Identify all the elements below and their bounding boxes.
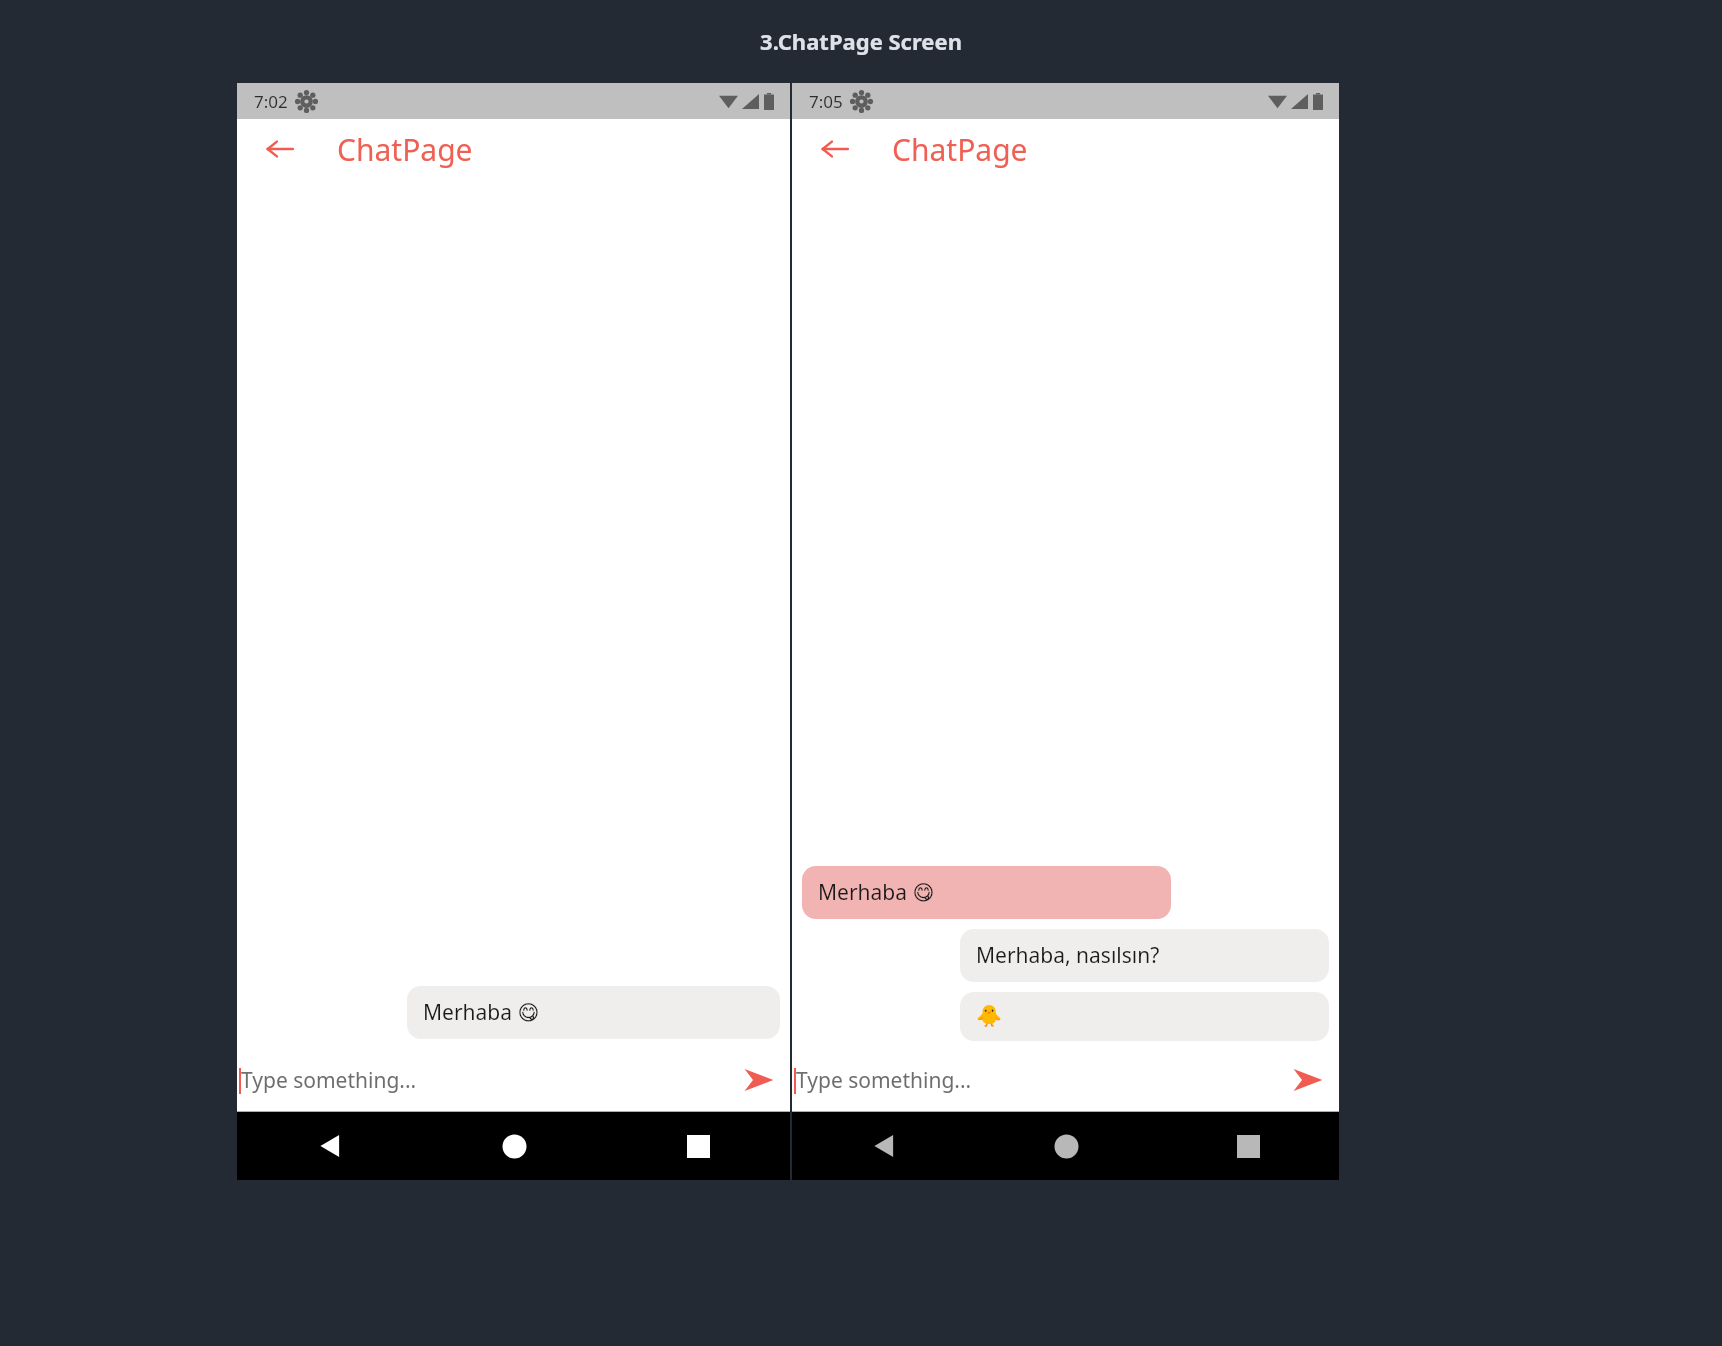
button[interactable]: Home	[975, 1112, 1157, 1180]
staticText: ChatPage	[892, 129, 1028, 170]
button[interactable]: Back	[257, 126, 303, 172]
staticText: 3.ChatPage Screen	[760, 26, 962, 56]
staticText: 7:05	[809, 90, 843, 113]
button[interactable]: 🐥	[960, 992, 1329, 1041]
button[interactable]: Type something...	[792, 1049, 1277, 1111]
staticText: Merhaba 😋	[423, 998, 540, 1027]
staticText: Type something...	[796, 1066, 972, 1095]
button[interactable]: Send	[728, 1049, 790, 1111]
button[interactable]: Type something...	[237, 1049, 728, 1111]
staticText: Merhaba 😋	[818, 878, 935, 907]
staticText: 🐥	[976, 1004, 1003, 1029]
button[interactable]: Merhaba 😋	[802, 866, 1171, 919]
staticText: ChatPage	[337, 129, 473, 170]
staticText: Type something...	[241, 1066, 417, 1095]
staticText: 7:02	[254, 90, 288, 113]
button[interactable]: Merhaba, nasılsın?	[960, 929, 1329, 982]
button[interactable]: Send	[1277, 1049, 1339, 1111]
button[interactable]: Home	[422, 1112, 606, 1180]
button[interactable]: Recent apps	[606, 1112, 790, 1180]
button[interactable]: Merhaba 😋	[407, 986, 780, 1039]
button[interactable]: Recent apps	[1157, 1112, 1339, 1180]
button[interactable]: Back	[792, 1112, 975, 1180]
staticText: Merhaba, nasılsın?	[976, 941, 1160, 970]
button[interactable]: Back	[812, 126, 858, 172]
button[interactable]: Back	[237, 1112, 422, 1180]
